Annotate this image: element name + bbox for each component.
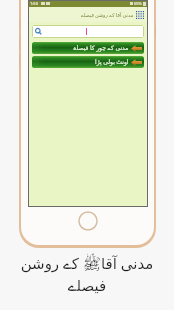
staticText: مدنی آقا کے روشن فیصلے — [81, 12, 134, 19]
staticText: مدنی آقاﷺ کے روشن فیصلے — [0, 253, 174, 294]
button[interactable] — [32, 25, 144, 38]
button[interactable]: مدنی کے چور کا فیصلہ — [32, 42, 144, 54]
staticText: اونٹ بولی پڑا — [95, 58, 129, 66]
button[interactable]: Grid view — [135, 10, 145, 20]
button[interactable]: اونٹ بولی پڑا — [32, 56, 144, 68]
staticText: مدنی کے چور کا فیصلہ — [73, 44, 129, 52]
staticText: 65% — [134, 1, 142, 6]
staticText: 1:50 — [30, 1, 38, 6]
